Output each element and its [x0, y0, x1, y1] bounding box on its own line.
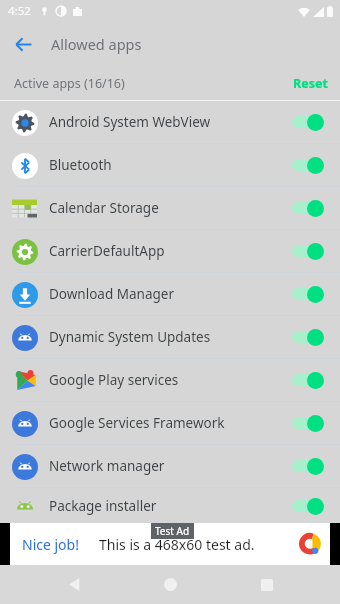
staticText: Android System WebView: [49, 113, 290, 131]
staticText: Google Play services: [49, 371, 290, 389]
staticText: Allowed apps: [51, 34, 142, 54]
button[interactable]: Package installer: [0, 488, 340, 523]
button[interactable]: [290, 241, 328, 261]
staticText: Nice job!: [22, 535, 79, 554]
staticText: Dynamic System Updates: [49, 328, 290, 346]
button[interactable]: [290, 370, 328, 390]
button[interactable]: Network manager: [0, 445, 340, 487]
button[interactable]: Recents: [244, 565, 290, 604]
staticText: Test Ad: [155, 524, 190, 538]
staticText: This is a 468x60 test ad.: [99, 535, 255, 554]
button[interactable]: [290, 198, 328, 218]
staticText: Download Manager: [49, 285, 290, 303]
button[interactable]: Bluetooth: [0, 144, 340, 186]
button[interactable]: [290, 327, 328, 347]
staticText: Google Services Framework: [49, 414, 290, 432]
button[interactable]: Dynamic System Updates: [0, 316, 340, 358]
staticText: Reset: [293, 75, 328, 92]
button[interactable]: Back: [51, 565, 97, 604]
button[interactable]: Google Play services: [0, 359, 340, 401]
staticText: Active apps (16/16): [14, 75, 125, 92]
button[interactable]: [290, 413, 328, 433]
button[interactable]: Reset: [281, 71, 340, 96]
button[interactable]: [290, 112, 328, 132]
staticText: Package installer: [49, 497, 290, 515]
button[interactable]: CarrierDefaultApp: [0, 230, 340, 272]
button[interactable]: [290, 284, 328, 304]
button[interactable]: Android System WebView: [0, 101, 340, 143]
button[interactable]: [290, 496, 328, 516]
staticText: Calendar Storage: [49, 199, 290, 217]
button[interactable]: [290, 155, 328, 175]
staticText: Bluetooth: [49, 156, 290, 174]
button[interactable]: [290, 456, 328, 476]
button[interactable]: Back: [6, 27, 40, 61]
staticText: CarrierDefaultApp: [49, 242, 290, 260]
staticText: Network manager: [49, 457, 290, 475]
button[interactable]: Google Services Framework: [0, 402, 340, 444]
button[interactable]: Home: [147, 565, 193, 604]
button[interactable]: Download Manager: [0, 273, 340, 315]
button[interactable]: Calendar Storage: [0, 187, 340, 229]
staticText: 4:52: [8, 3, 31, 19]
